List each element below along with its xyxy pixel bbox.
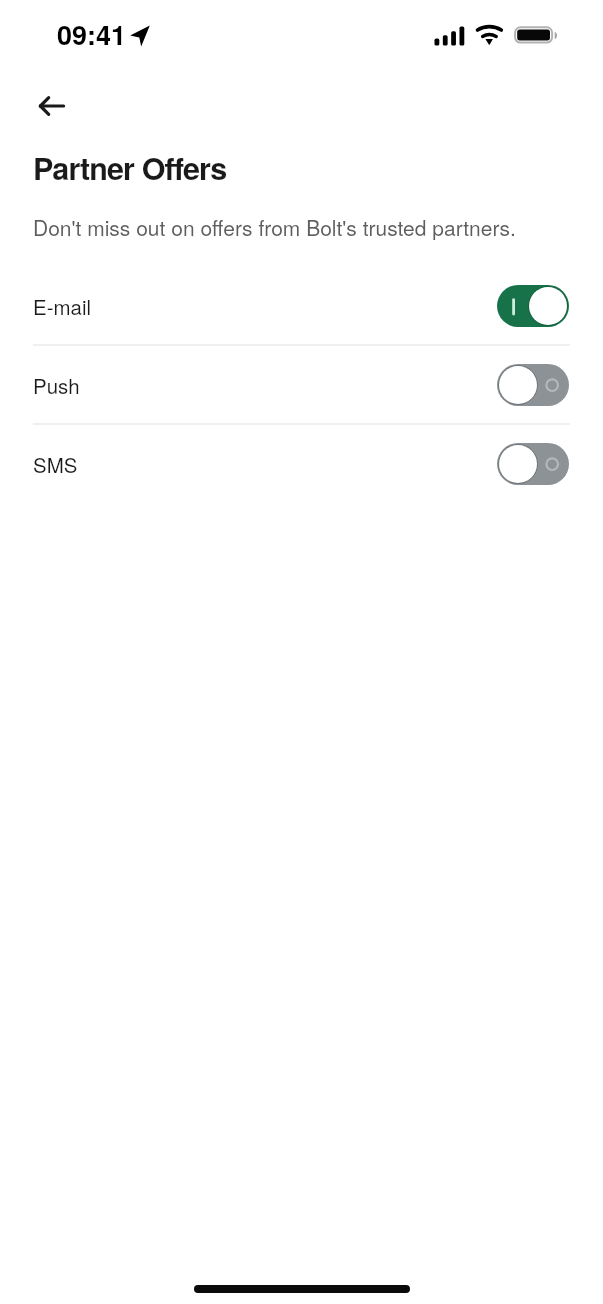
staticText: Partner Offers (33, 146, 227, 190)
button[interactable]: E-mail (0, 267, 603, 344)
staticText: E-mail (33, 291, 92, 320)
button[interactable]: Back (30, 84, 74, 128)
staticText: SMS (33, 449, 78, 478)
button[interactable]: Push (0, 346, 603, 423)
staticText: Push (33, 370, 80, 399)
button[interactable]: SMS (0, 425, 603, 502)
button[interactable]: Toggle off (497, 364, 569, 406)
button[interactable]: Toggle on (497, 285, 569, 327)
button[interactable]: Toggle off (497, 443, 569, 485)
staticText: 09:41 (57, 15, 127, 54)
staticText: Don't miss out on offers from Bolt's tru… (33, 212, 516, 242)
